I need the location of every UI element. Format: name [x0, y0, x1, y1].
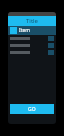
- staticText: Item: [19, 27, 30, 34]
- staticText: Title: [26, 17, 38, 25]
- staticText: GO: [28, 106, 36, 113]
- button[interactable]: Title: [8, 16, 56, 26]
- button[interactable]: [8, 42, 56, 49]
- button[interactable]: [8, 35, 56, 42]
- button[interactable]: GO: [10, 104, 54, 114]
- button[interactable]: Item: [8, 26, 56, 35]
- button[interactable]: [8, 49, 56, 56]
